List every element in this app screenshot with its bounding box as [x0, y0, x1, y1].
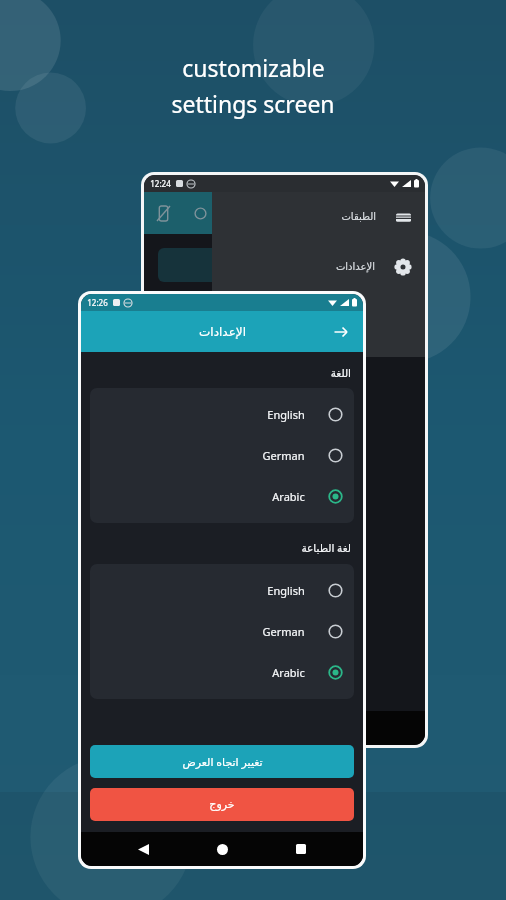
button[interactable]: English — [90, 394, 354, 435]
button[interactable]: Arabic — [90, 476, 354, 517]
button[interactable]: الطبقات — [212, 192, 425, 242]
button[interactable]: English — [90, 570, 354, 611]
staticText: خروج — [209, 798, 235, 811]
button[interactable]: Arabic — [90, 652, 354, 693]
staticText: Arabic — [272, 665, 305, 680]
button[interactable]: Forward — [327, 318, 355, 346]
button[interactable]: German — [90, 611, 354, 652]
button[interactable]: الإعدادات — [212, 242, 425, 292]
button[interactable]: خروج — [90, 788, 354, 821]
button[interactable]: Home — [205, 832, 239, 866]
staticText: 12:26 — [87, 297, 108, 308]
staticText: لغة الطباعة — [90, 541, 351, 555]
staticText: German — [262, 448, 305, 463]
button[interactable]: Back — [126, 832, 160, 866]
staticText: الإعدادات — [335, 261, 375, 273]
staticText: 12:24 — [150, 178, 171, 189]
button[interactable]: تغيير اتجاه العرض — [90, 745, 354, 778]
other: Layers — [396, 210, 411, 225]
staticText: Arabic — [272, 489, 305, 504]
staticText: English — [267, 407, 305, 422]
button[interactable]: Recents — [284, 832, 318, 866]
other: Settings — [395, 259, 411, 275]
button[interactable]: German — [90, 435, 354, 476]
staticText: German — [262, 624, 305, 639]
staticText: تغيير اتجاه العرض — [182, 754, 263, 769]
staticText: settings screen — [171, 88, 335, 119]
staticText: customizable — [182, 52, 325, 83]
staticText: اللغة — [90, 367, 351, 379]
staticText: الإعدادات — [199, 325, 246, 339]
staticText: English — [267, 583, 305, 598]
staticText: الطبقات — [341, 211, 376, 223]
